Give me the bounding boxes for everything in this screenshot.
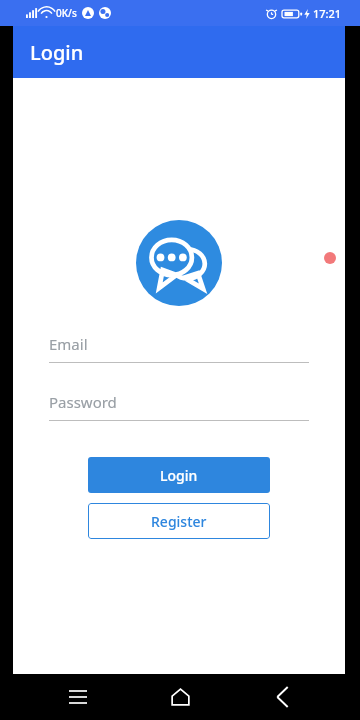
button[interactable]: Back [258,674,306,720]
staticText: Login [160,466,198,485]
button[interactable]: Recent apps [54,674,102,720]
staticText: Email [49,334,88,354]
staticText: Password [49,392,117,412]
staticText: 0K/s [56,6,77,20]
staticText: Register [151,512,207,531]
staticText: Login [30,39,84,66]
button[interactable]: Home [156,674,204,720]
button[interactable]: Register [88,503,270,539]
button[interactable]: Login [88,457,270,493]
staticText: 17:21 [313,6,342,21]
